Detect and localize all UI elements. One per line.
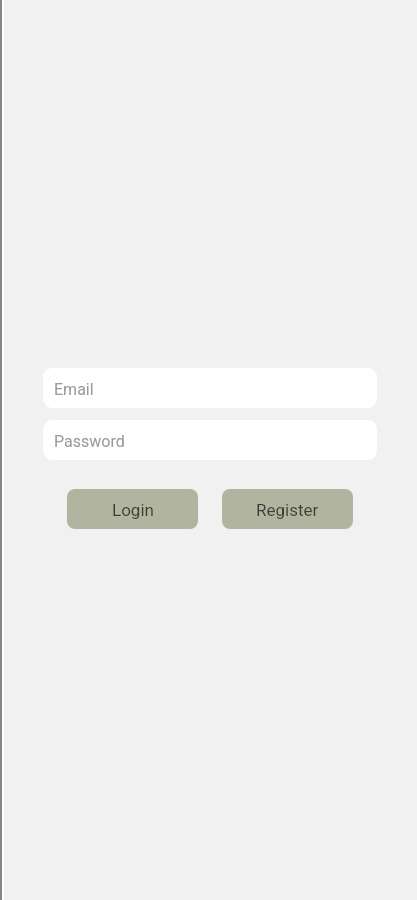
button[interactable]: Password input field [43, 420, 377, 460]
button[interactable]: Email input field [43, 368, 377, 408]
button[interactable]: Login [67, 489, 198, 529]
staticText: Register [256, 500, 319, 520]
staticText: Password [54, 432, 125, 451]
staticText: Login [112, 500, 154, 520]
button[interactable]: Register [222, 489, 353, 529]
staticText: Email [54, 380, 94, 399]
